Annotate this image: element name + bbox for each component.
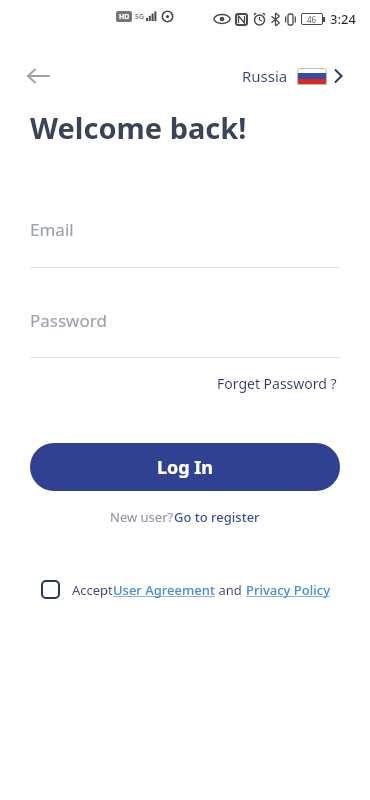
button[interactable] bbox=[41, 580, 60, 599]
button[interactable]: Forget Password ? bbox=[217, 374, 337, 393]
button[interactable]: Go to register bbox=[174, 508, 260, 526]
button[interactable]: Russia bbox=[242, 66, 344, 86]
staticText: 3:24 bbox=[330, 10, 356, 28]
button[interactable] bbox=[28, 68, 49, 84]
staticText: Accept bbox=[72, 581, 113, 599]
staticText: Log In bbox=[157, 455, 214, 480]
staticText: 46 bbox=[307, 14, 317, 25]
staticText: Password bbox=[30, 309, 107, 332]
button[interactable]: Log In bbox=[30, 443, 340, 491]
staticText: 5G bbox=[135, 12, 145, 22]
staticText: Russia bbox=[242, 66, 288, 86]
staticText: HD bbox=[119, 12, 130, 22]
staticText: Welcome back! bbox=[30, 108, 247, 147]
staticText: and bbox=[215, 581, 246, 599]
staticText: Email bbox=[30, 218, 74, 241]
button[interactable]: User Agreement bbox=[113, 581, 215, 599]
staticText: New user? bbox=[110, 508, 174, 526]
button[interactable]: Privacy Policy bbox=[246, 581, 330, 599]
